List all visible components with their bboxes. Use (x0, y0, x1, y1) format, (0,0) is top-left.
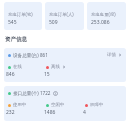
staticText: 充电电量(度) (91, 11, 116, 17)
button[interactable]: 充电订单(笔) (4, 2, 42, 30)
button[interactable]: 充电订单(人) (45, 2, 84, 30)
button[interactable]: 充电电量(度) (87, 2, 126, 30)
staticText: 详情 (107, 52, 116, 58)
button[interactable]: 接口总量(个) 1722 (6, 90, 122, 96)
staticText: 4 (83, 109, 86, 116)
staticText: 1486 (44, 109, 56, 116)
staticText: 充电订单(人) (49, 11, 74, 17)
staticText: 资产信息 (5, 36, 27, 43)
staticText: 509 (49, 19, 58, 26)
staticText: 空闲中 (51, 102, 65, 108)
staticText: 故障中 (90, 102, 104, 108)
staticText: 接口总量(个) 1722 (13, 90, 51, 96)
staticText: 232 (6, 109, 15, 116)
staticText: 离线 (51, 64, 60, 70)
staticText: 253.086 (91, 19, 110, 26)
staticText: 使用中 (13, 102, 27, 108)
staticText: 15 (44, 71, 50, 78)
staticText: 设备总量(台) 861 (13, 52, 48, 58)
staticText: 545 (8, 19, 17, 26)
staticText: 充电订单(笔) (8, 11, 33, 17)
button[interactable]: 设备总量(台) 861 (6, 52, 122, 58)
staticText: 846 (6, 71, 15, 78)
staticText: 在线 (13, 64, 22, 70)
